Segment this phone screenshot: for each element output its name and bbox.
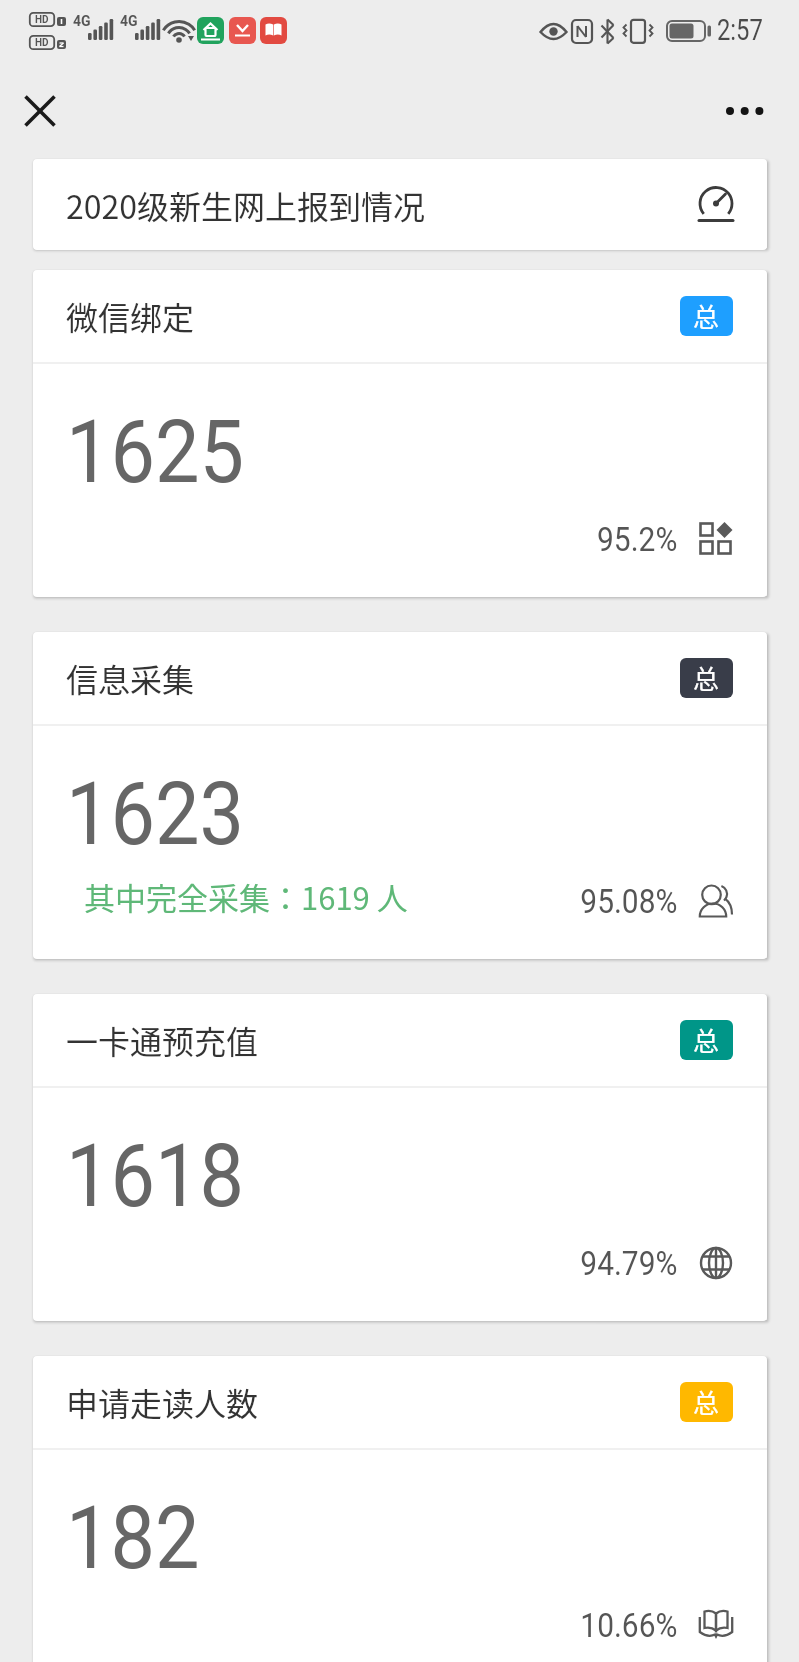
staticText: 95.2% [597, 519, 678, 559]
staticText: 4G [120, 13, 138, 29]
staticText: 94.79% [580, 1243, 678, 1283]
staticText: 信息采集 [66, 655, 195, 701]
staticText: 1623 [66, 762, 244, 865]
staticText: 2:57 [717, 13, 763, 47]
staticText: 微信绑定 [66, 293, 195, 339]
staticText: 其中完全采集：1619 人 [84, 874, 408, 919]
staticText: 10.66% [580, 1605, 678, 1645]
staticText: 182 [66, 1486, 200, 1589]
staticText: 2020级新生网上报到情况 [66, 182, 426, 228]
button[interactable]: 微信绑定 [33, 270, 767, 597]
staticText: HD [35, 37, 49, 49]
button[interactable]: 申请走读人数 [33, 1356, 767, 1662]
button[interactable] [714, 87, 776, 135]
staticText: 1625 [66, 400, 244, 503]
staticText: HD [35, 14, 49, 26]
button[interactable]: 一卡通预充值 [33, 994, 767, 1321]
staticText: 总 [693, 659, 720, 697]
button[interactable]: 信息采集 [33, 632, 767, 959]
button[interactable] [14, 85, 66, 137]
staticText: 95.08% [580, 881, 678, 921]
staticText: 总 [693, 1383, 720, 1421]
staticText: 1618 [66, 1124, 244, 1227]
staticText: 4G [73, 13, 91, 29]
staticText: 申请走读人数 [66, 1379, 259, 1425]
staticText: 一卡通预充值 [66, 1017, 259, 1063]
button[interactable]: 2020级新生网上报到情况 [33, 159, 767, 250]
staticText: 总 [693, 1021, 720, 1059]
staticText: 总 [693, 297, 720, 335]
